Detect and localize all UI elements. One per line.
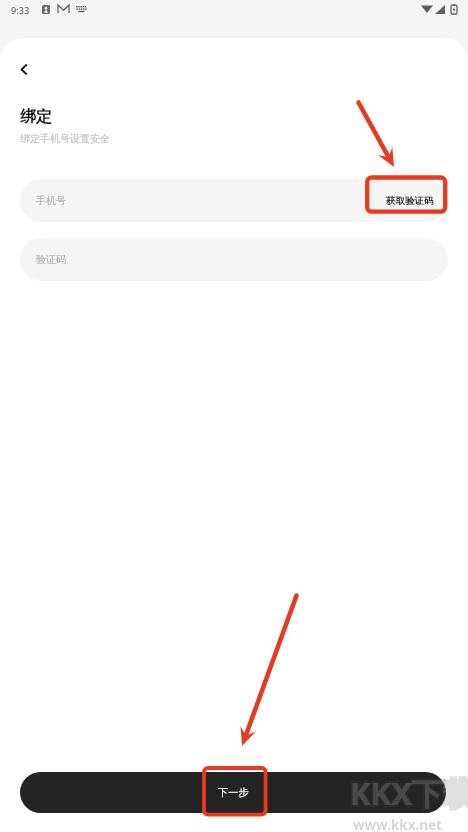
button[interactable]: 手机号 xyxy=(20,179,448,222)
staticText: 9:33 xyxy=(11,4,30,17)
staticText: 下一步 xyxy=(218,786,249,799)
staticText: KKX下载 xyxy=(350,772,468,814)
staticText: 手机号 xyxy=(36,194,66,207)
button[interactable]: 获取验证码 xyxy=(372,181,448,221)
button[interactable]: 验证码 xyxy=(20,238,448,281)
staticText: 绑定手机号设置安全 xyxy=(20,132,110,145)
staticText: KKX下载 xyxy=(350,772,468,814)
staticText: www.kkx.net xyxy=(353,816,442,832)
button[interactable]: 下一步 xyxy=(20,772,446,813)
button[interactable]: Back xyxy=(6,52,41,87)
staticText: 绑定 xyxy=(20,107,52,127)
staticText: 验证码 xyxy=(36,253,66,266)
staticText: 获取验证码 xyxy=(386,195,434,207)
